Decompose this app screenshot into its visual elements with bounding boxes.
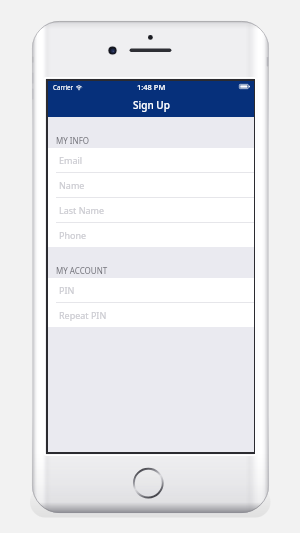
staticText: Carrier: [53, 83, 74, 91]
staticText: Repeat PIN: [59, 309, 107, 321]
staticText: Sign Up: [133, 98, 170, 112]
other: Battery full: [239, 84, 250, 89]
button[interactable]: Phone: [48, 223, 254, 247]
button[interactable]: Email: [48, 148, 254, 172]
staticText: Last Name: [59, 204, 105, 216]
staticText: MY ACCOUNT: [56, 265, 108, 276]
staticText: 1:48 PM: [137, 82, 166, 92]
button[interactable]: PIN: [48, 278, 254, 302]
button[interactable]: Repeat PIN: [48, 303, 254, 327]
staticText: Phone: [59, 229, 87, 241]
other: Wi-Fi signal: [75, 84, 83, 90]
staticText: PIN: [59, 284, 75, 296]
button[interactable]: Name: [48, 173, 254, 197]
staticText: Email: [59, 154, 83, 166]
staticText: Name: [59, 179, 85, 191]
staticText: MY INFO: [56, 135, 90, 146]
button[interactable]: Last Name: [48, 198, 254, 222]
